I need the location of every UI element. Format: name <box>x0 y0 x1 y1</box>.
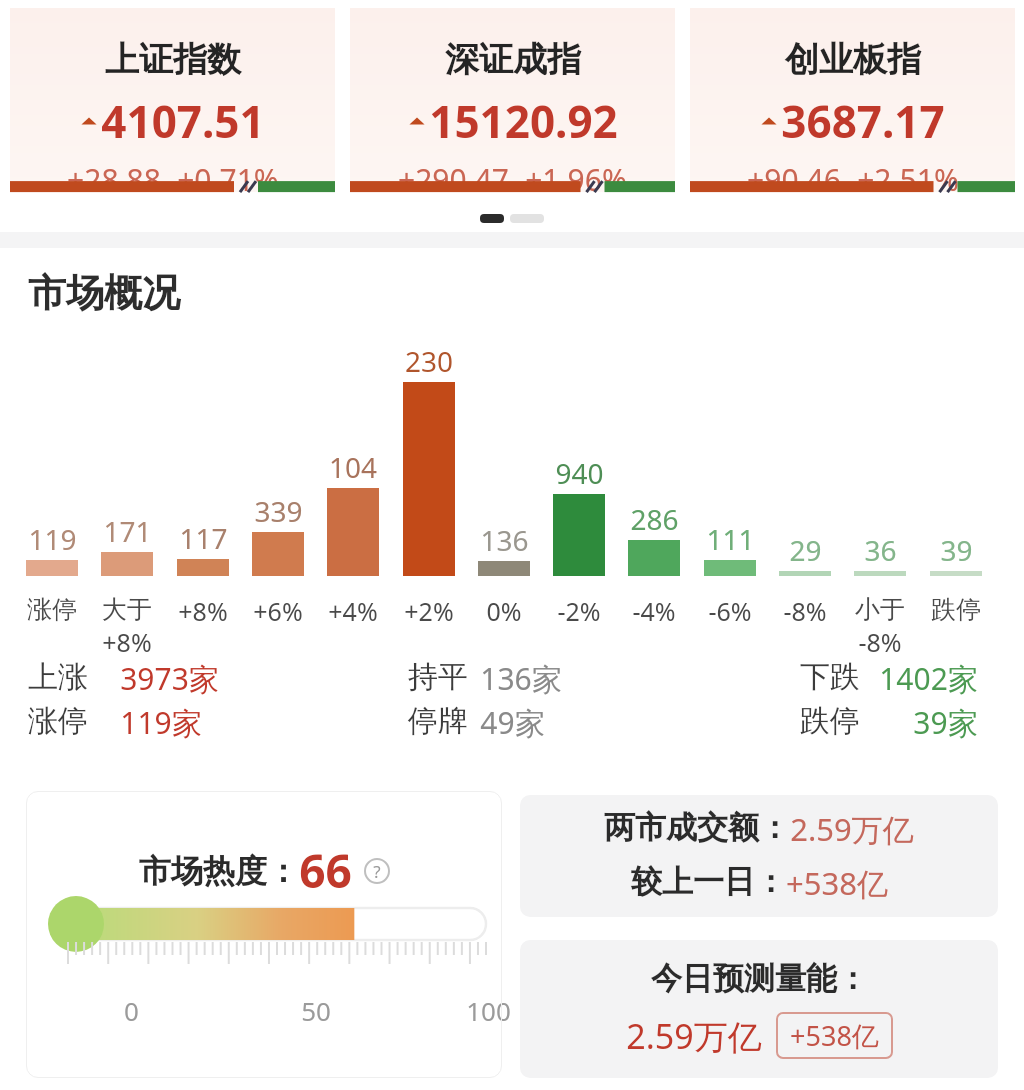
button[interactable]: 创业板指 <box>690 8 1015 192</box>
staticText: 停牌 <box>408 702 468 740</box>
staticText: 较上一日： <box>631 862 786 901</box>
staticText: 3687.17 <box>781 91 945 151</box>
staticText: 15120.92 <box>429 91 618 151</box>
staticText: 两市成交额： <box>604 808 790 847</box>
staticText: 2.59万亿 <box>626 1013 762 1059</box>
button[interactable]: 深证成指 <box>350 8 675 192</box>
staticText: 小于 <box>855 594 905 625</box>
staticText: +0.71% <box>177 159 279 192</box>
staticText: 29 <box>789 531 822 569</box>
button[interactable]: 上证指数 <box>10 8 335 192</box>
staticText: 上涨 <box>28 658 88 696</box>
staticText: 2.59万亿 <box>790 808 914 850</box>
staticText: 136 <box>480 521 529 559</box>
staticText: 涨停 <box>28 702 88 740</box>
staticText: 持平 <box>408 658 468 696</box>
staticText: 171 <box>103 512 152 550</box>
staticText: 4107.51 <box>101 91 265 151</box>
staticText: 3973家 <box>120 658 219 699</box>
staticText: 市场热度： <box>139 851 299 891</box>
staticText: -4% <box>632 594 676 628</box>
staticText: 119家 <box>120 702 202 743</box>
staticText: +290.47 <box>398 159 509 192</box>
staticText: 市场概况 <box>28 269 180 317</box>
staticText: 0 <box>124 993 139 1028</box>
button[interactable]: 今日预测量能： <box>520 940 998 1078</box>
button[interactable]: 帮助说明 <box>364 858 390 884</box>
button[interactable]: 市场热度： <box>26 791 502 1078</box>
staticText: +2% <box>404 594 454 628</box>
staticText: ? <box>373 860 381 883</box>
staticText: 136家 <box>480 658 562 699</box>
staticText: -8% <box>783 594 827 628</box>
staticText: 0% <box>486 594 522 628</box>
staticText: 1046 <box>321 448 385 524</box>
staticText: 100 <box>466 993 511 1028</box>
staticText: +538亿 <box>786 862 888 904</box>
staticText: 大于 <box>102 594 152 625</box>
staticText: +8% <box>178 594 228 628</box>
staticText: +538亿 <box>790 1017 879 1054</box>
staticText: 286 <box>630 500 679 538</box>
staticText: 跌停 <box>800 702 860 740</box>
staticText: 66 <box>299 839 352 902</box>
button[interactable]: 两市成交额： <box>520 795 998 917</box>
staticText: 117 <box>179 519 228 557</box>
staticText: 下跌 <box>800 658 860 696</box>
staticText: 50 <box>301 993 331 1028</box>
staticText: -6% <box>708 594 752 628</box>
staticText: 39 <box>940 531 973 569</box>
staticText: +28.88 <box>67 159 161 192</box>
staticText: 1402家 <box>879 658 978 699</box>
staticText: 111 <box>706 520 755 558</box>
staticText: +8% <box>102 625 152 659</box>
staticText: 339 <box>254 492 303 530</box>
staticText: 2300 <box>397 342 461 418</box>
staticText: -8% <box>858 625 902 659</box>
staticText: 119 <box>28 520 77 558</box>
staticText: 跌停 <box>931 594 981 625</box>
staticText: 今日预测量能： <box>651 959 868 998</box>
staticText: 深证成指 <box>445 38 581 81</box>
staticText: 940 <box>555 454 604 492</box>
staticText: 涨停 <box>27 594 77 625</box>
staticText: +1.96% <box>525 159 627 192</box>
staticText: 36 <box>864 531 897 569</box>
staticText: +90.46 <box>747 159 841 192</box>
staticText: +4% <box>328 594 378 628</box>
staticText: +6% <box>253 594 303 628</box>
staticText: -2% <box>557 594 601 628</box>
staticText: 49家 <box>480 702 545 743</box>
staticText: 上证指数 <box>105 38 241 81</box>
staticText: +2.51% <box>857 159 959 192</box>
staticText: 创业板指 <box>785 38 921 81</box>
staticText: 39家 <box>913 702 978 743</box>
